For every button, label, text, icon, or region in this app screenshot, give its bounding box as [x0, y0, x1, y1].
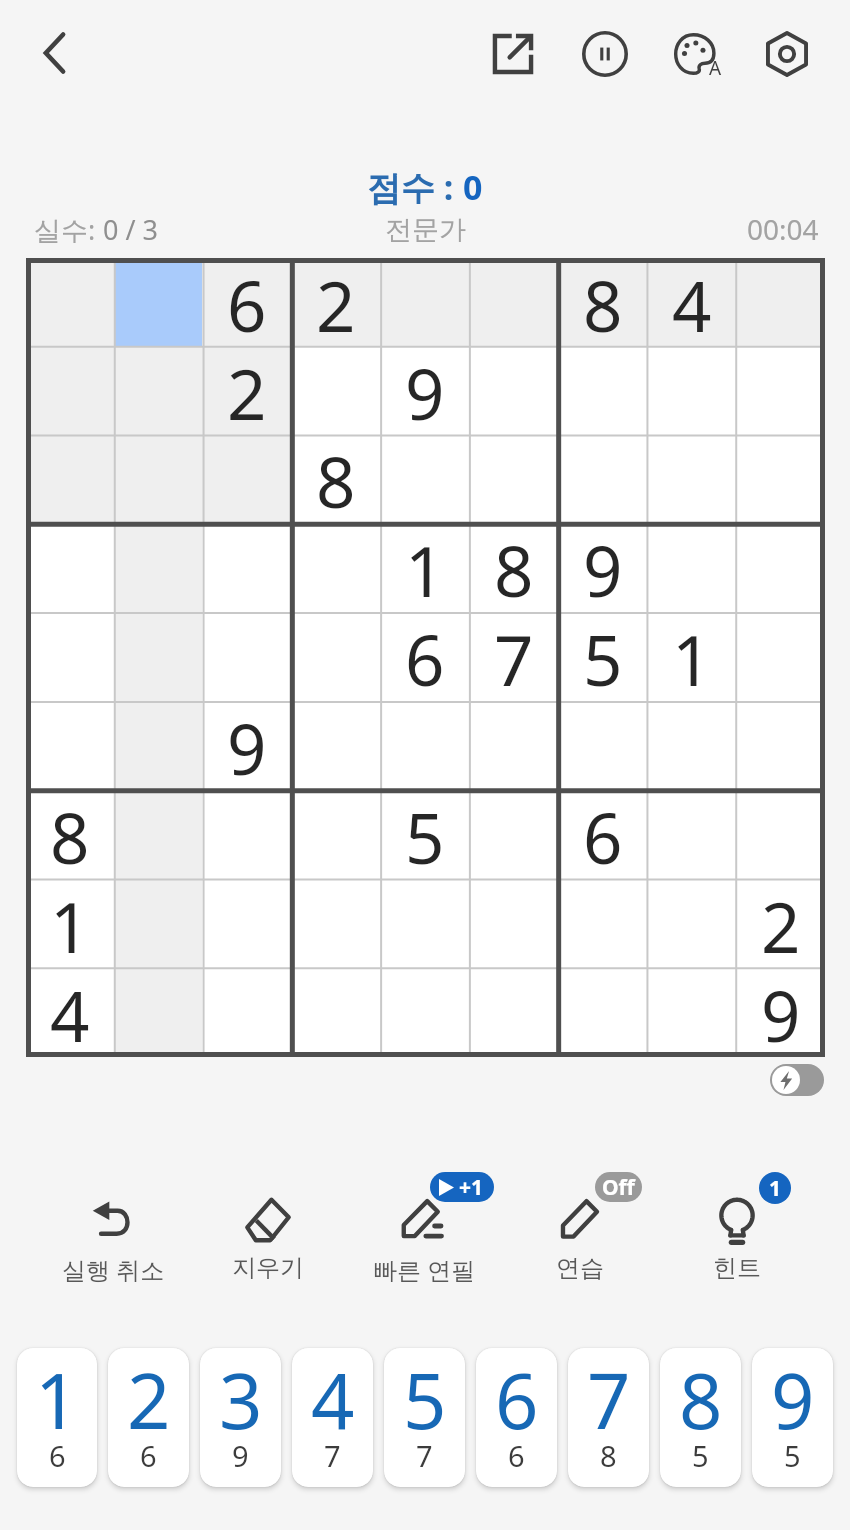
button[interactable]: Cell row 6 column 2, empty [114, 701, 202, 790]
button[interactable]: Cell row 6 column 1, empty [26, 701, 114, 790]
button[interactable]: Cell row 6 column 4, empty [291, 701, 380, 790]
button[interactable]: Back [24, 23, 84, 83]
button[interactable]: Cell row 8 column 5, empty [380, 879, 469, 968]
button[interactable]: 9 [752, 1348, 833, 1487]
button[interactable]: Cell row 2 column 2, empty [114, 346, 202, 434]
button[interactable]: 5 [384, 1348, 465, 1487]
button[interactable]: Cell row 8 column 2, empty [114, 879, 202, 968]
button[interactable]: Cell row 9 column 4, empty [291, 968, 380, 1057]
button[interactable]: Cell row 3 column 5, empty [380, 434, 469, 523]
button[interactable]: 1 [17, 1348, 97, 1487]
button[interactable]: Cell row 4 column 7, 9 [558, 523, 647, 612]
button[interactable]: Cell row 3 column 4, 8 [291, 434, 380, 523]
button[interactable]: Cell row 5 column 7, 5 [558, 612, 647, 701]
button[interactable]: Cell row 3 column 9, empty [736, 434, 825, 523]
button[interactable]: Cell row 3 column 2, empty [114, 434, 202, 523]
button[interactable]: Settings [757, 24, 817, 84]
button[interactable]: Cell row 5 column 4, empty [291, 612, 380, 701]
button[interactable]: 6 [476, 1348, 557, 1487]
button[interactable]: 1 [659, 1193, 815, 1283]
button[interactable]: Cell row 8 column 3, empty [202, 879, 291, 968]
button[interactable]: Cell row 6 column 5, empty [380, 701, 469, 790]
button[interactable]: Cell row 7 column 8, empty [647, 790, 736, 879]
button[interactable]: Cell row 8 column 7, empty [558, 879, 647, 968]
button[interactable]: Cell row 1 column 7, 8 [558, 258, 647, 346]
button[interactable]: Cell row 7 column 5, 5 [380, 790, 469, 879]
button[interactable]: Cell row 1 column 4, 2 [291, 258, 380, 346]
button[interactable]: Share [483, 24, 543, 84]
button[interactable]: Cell row 3 column 7, empty [558, 434, 647, 523]
button[interactable]: Cell row 5 column 9, empty [736, 612, 825, 701]
button[interactable]: Off [502, 1193, 658, 1283]
button[interactable]: Pause [575, 24, 635, 84]
button[interactable]: Cell row 6 column 9, empty [736, 701, 825, 790]
button[interactable]: Cell row 9 column 3, empty [202, 968, 291, 1057]
button[interactable]: Cell row 3 column 3, empty [202, 434, 291, 523]
button[interactable]: Cell row 4 column 4, empty [291, 523, 380, 612]
button[interactable]: Cell row 3 column 6, empty [469, 434, 558, 523]
button[interactable]: Cell row 2 column 6, empty [469, 346, 558, 434]
button[interactable]: Cell row 9 column 8, empty [647, 968, 736, 1057]
button[interactable]: Cell row 1 column 5, empty [380, 258, 469, 346]
button[interactable]: Cell row 5 column 8, 1 [647, 612, 736, 701]
button[interactable]: 7 [568, 1348, 649, 1487]
button[interactable]: Cell row 9 column 1, 4 [26, 968, 114, 1057]
button[interactable]: Cell row 1 column 8, 4 [647, 258, 736, 346]
button[interactable]: Cell row 2 column 3, 2 [202, 346, 291, 434]
button[interactable]: Cell row 6 column 3, 9 [202, 701, 291, 790]
button[interactable]: Cell row 9 column 5, empty [380, 968, 469, 1057]
button[interactable]: Cell row 4 column 3, empty [202, 523, 291, 612]
button[interactable]: Cell row 2 column 9, empty [736, 346, 825, 434]
button[interactable]: Cell row 9 column 9, 9 [736, 968, 825, 1057]
button[interactable]: 8 [660, 1348, 741, 1487]
button[interactable]: Cell row 2 column 5, 9 [380, 346, 469, 434]
button[interactable]: Cell row 7 column 1, 8 [26, 790, 114, 879]
button[interactable]: Cell row 9 column 7, empty [558, 968, 647, 1057]
button[interactable]: Cell row 3 column 8, empty [647, 434, 736, 523]
button[interactable]: Cell row 5 column 6, 7 [469, 612, 558, 701]
button[interactable]: Cell row 2 column 4, empty [291, 346, 380, 434]
button[interactable]: Cell row 6 column 7, empty [558, 701, 647, 790]
button[interactable]: Cell row 7 column 6, empty [469, 790, 558, 879]
button[interactable]: Cell row 2 column 8, empty [647, 346, 736, 434]
button[interactable]: Cell row 7 column 2, empty [114, 790, 202, 879]
button[interactable]: Cell row 1 column 3, 6 [202, 258, 291, 346]
button[interactable]: Cell row 9 column 2, empty [114, 968, 202, 1057]
button[interactable]: Cell row 8 column 9, 2 [736, 879, 825, 968]
button[interactable]: Cell row 1 column 1, empty [26, 258, 114, 346]
button[interactable]: Cell row 7 column 7, 6 [558, 790, 647, 879]
button[interactable]: +1 [346, 1193, 502, 1286]
button[interactable]: Theme [665, 24, 725, 84]
button[interactable]: Cell row 4 column 2, empty [114, 523, 202, 612]
button[interactable]: Cell row 4 column 6, 8 [469, 523, 558, 612]
button[interactable]: Cell row 4 column 8, empty [647, 523, 736, 612]
button[interactable]: Cell row 8 column 4, empty [291, 879, 380, 968]
button[interactable]: Cell row 6 column 6, empty [469, 701, 558, 790]
button[interactable]: Cell row 8 column 1, 1 [26, 879, 114, 968]
button[interactable]: Cell row 1 column 2, empty [114, 258, 202, 346]
button[interactable]: Cell row 5 column 1, empty [26, 612, 114, 701]
button[interactable]: 지우기 [190, 1193, 346, 1283]
button[interactable]: Cell row 8 column 6, empty [469, 879, 558, 968]
button[interactable]: Cell row 2 column 1, empty [26, 346, 114, 434]
button[interactable]: Cell row 6 column 8, empty [647, 701, 736, 790]
button[interactable]: 2 [108, 1348, 189, 1487]
button[interactable]: Cell row 7 column 4, empty [291, 790, 380, 879]
button[interactable]: 실행 취소 [35, 1193, 191, 1286]
button[interactable]: Cell row 5 column 3, empty [202, 612, 291, 701]
button[interactable]: Cell row 1 column 9, empty [736, 258, 825, 346]
button[interactable]: Cell row 7 column 9, empty [736, 790, 825, 879]
button[interactable]: 4 [292, 1348, 373, 1487]
button[interactable]: Cell row 5 column 2, empty [114, 612, 202, 701]
button[interactable]: Cell row 9 column 6, empty [469, 968, 558, 1057]
button[interactable]: Cell row 1 column 6, empty [469, 258, 558, 346]
button[interactable]: Cell row 7 column 3, empty [202, 790, 291, 879]
button[interactable]: Cell row 4 column 1, empty [26, 523, 114, 612]
button[interactable]: Cell row 4 column 9, empty [736, 523, 825, 612]
button[interactable]: Cell row 2 column 7, empty [558, 346, 647, 434]
button[interactable]: Cell row 5 column 5, 6 [380, 612, 469, 701]
button[interactable]: 3 [200, 1348, 281, 1487]
button[interactable]: Cell row 3 column 1, empty [26, 434, 114, 523]
button[interactable]: Cell row 4 column 5, 1 [380, 523, 469, 612]
button[interactable]: Auto check [770, 1064, 824, 1096]
